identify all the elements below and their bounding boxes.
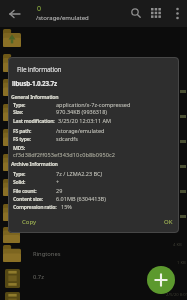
staticText: + [56,178,60,185]
staticText: Content size: [13,195,43,202]
button[interactable]: Copy [12,214,46,229]
staticText: Type: [13,170,26,177]
staticText: General Information [11,93,59,100]
staticText: libusb-1.0.23.7z [12,79,58,88]
staticText: Archive Information [11,160,58,167]
button[interactable]: 0 [34,1,124,25]
button[interactable] [147,266,175,294]
button[interactable]: Ringtones [0,241,187,266]
staticText: File count: [13,187,37,194]
staticText: Last modification: [13,117,55,124]
staticText: FS type: [13,135,31,142]
staticText: 970.34KB (9936318) [56,108,107,115]
staticText: Compression ratio: [13,203,57,210]
staticText: 0.7z [33,273,44,281]
button[interactable] [6,6,24,22]
staticText: 7z / LZMA2.23 BCJ [56,170,103,177]
staticText: MD5: [13,144,25,151]
staticText: Ringtones [33,250,61,258]
staticText: 0 [37,4,42,14]
staticText: 29 [56,187,63,194]
button[interactable] [172,5,184,22]
staticText: application/x-7z-compressed [56,101,131,108]
button[interactable] [129,6,144,21]
staticText: Type: [13,101,26,108]
staticText: 15% [61,203,72,210]
button[interactable] [150,7,163,20]
staticText: /storage/emulated [56,127,105,134]
staticText: OK [164,218,173,226]
staticText: 6.01MB (6304413B) [56,195,106,202]
staticText: 1 KB [177,260,186,266]
staticText: 4 KB [173,242,182,248]
staticText: cf3d38df2ff053ef343d10c0b8b0950c2 [13,151,116,159]
button[interactable]: 0.7z [0,266,187,291]
staticText: FS path: [13,127,32,134]
staticText: Size: [13,108,24,115]
staticText: 2/5/20 8:01 PM [166,292,187,298]
staticText: Solid: [13,178,26,185]
staticText: 3/25/20 12:03:11 AM [58,117,112,124]
staticText: /storage/emulated [36,14,89,22]
staticText: File information [17,65,62,74]
staticText: Copy [22,218,37,226]
button[interactable]: OK [156,214,180,229]
staticText: sdcardfs [56,135,78,142]
